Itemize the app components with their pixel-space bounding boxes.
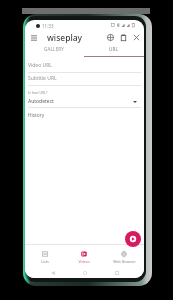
staticText: 11:33: [42, 23, 54, 29]
staticText: Lists: [41, 259, 49, 264]
button[interactable]: Menu: [27, 31, 40, 44]
button[interactable]: GALLERY: [25, 45, 84, 57]
staticText: URL: [109, 46, 119, 52]
staticText: wiseplay: [47, 32, 83, 44]
button[interactable]: Back: [48, 268, 57, 277]
button[interactable]: Play: [125, 231, 141, 247]
staticText: Autodetect: [28, 98, 54, 105]
button[interactable]: Search web: [104, 31, 117, 44]
staticText: Videos: [78, 259, 90, 264]
button[interactable]: Paste: [117, 31, 130, 44]
button[interactable]: Close: [130, 31, 143, 44]
staticText: Subtitle URL: [28, 75, 57, 82]
staticText: History: [28, 112, 45, 119]
button[interactable]: Home: [80, 268, 89, 277]
staticText: Web Browser: [113, 259, 136, 264]
button[interactable]: Lists: [25, 245, 64, 266]
button[interactable]: Videos: [64, 245, 104, 266]
button[interactable]: Web Browser: [104, 245, 144, 266]
staticText: Video URL: [28, 62, 52, 69]
button[interactable]: Recents: [112, 268, 121, 277]
staticText: Is host URL?: [28, 90, 48, 95]
button[interactable]: URL: [84, 45, 144, 57]
staticText: GALLERY: [44, 46, 65, 52]
